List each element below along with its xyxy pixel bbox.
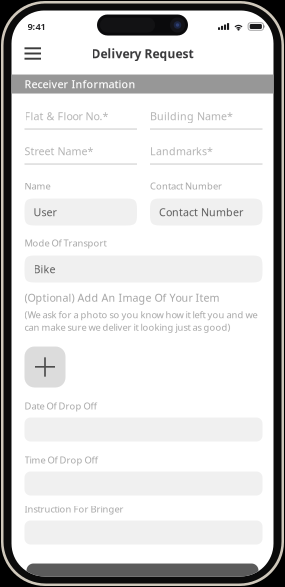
staticText: Name <box>24 180 50 192</box>
staticText: Street Name* <box>24 144 93 158</box>
staticText: Building Name* <box>150 109 233 123</box>
staticText: Contact Number <box>150 180 222 192</box>
button[interactable]: Contact Number <box>150 198 262 225</box>
staticText: Date Of Drop Off <box>24 400 96 412</box>
staticText: (We ask for a photo so you know how it l… <box>24 308 257 333</box>
button[interactable]: Building Name* <box>150 110 262 129</box>
staticText: Delivery Request <box>91 45 193 61</box>
staticText: Instruction For Bringer <box>24 503 123 515</box>
staticText: 9:41 <box>27 20 45 33</box>
button[interactable]: Street Name* <box>24 145 137 164</box>
button[interactable]: Landmarks* <box>150 145 262 164</box>
button[interactable]: Flat & Floor No.* <box>24 110 137 129</box>
button[interactable]: Add image <box>24 346 65 387</box>
button[interactable]: User <box>24 198 137 225</box>
staticText: Flat & Floor No.* <box>24 109 108 123</box>
staticText: User <box>33 205 56 219</box>
button[interactable]: Menu <box>24 42 54 64</box>
staticText: Receiver Information <box>24 77 135 91</box>
staticText: Time Of Drop Off <box>24 454 97 466</box>
button[interactable]: Bike <box>24 255 262 282</box>
staticText: Landmarks* <box>150 144 213 158</box>
button[interactable]: Submit delivery request <box>11 563 273 577</box>
staticText: Contact Number <box>159 205 243 219</box>
staticText: Bike <box>33 262 55 276</box>
staticText: Mode Of Transport <box>24 237 106 249</box>
staticText: (Optional) Add An Image Of Your Item <box>24 290 219 305</box>
